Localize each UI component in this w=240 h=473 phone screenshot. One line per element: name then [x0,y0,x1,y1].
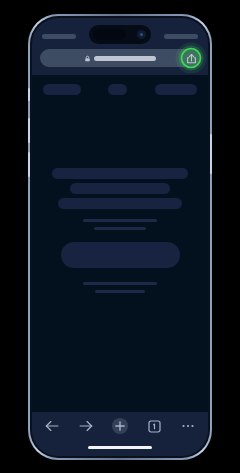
button[interactable]: More [177,415,199,437]
button[interactable]: Share [179,46,203,70]
button[interactable]: New tab [109,415,131,437]
button[interactable]: Tabs [143,415,165,437]
button[interactable]: Back [41,415,63,437]
button[interactable] [40,49,200,67]
button[interactable]: Forward [75,415,97,437]
